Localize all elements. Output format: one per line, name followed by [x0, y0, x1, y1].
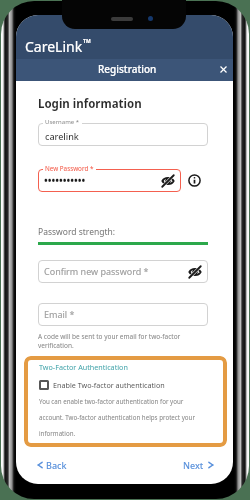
staticText: •••••••••••	[44, 173, 86, 187]
staticText: Two-Factor Authentication	[39, 362, 128, 372]
staticText: Confirm new password *	[44, 265, 149, 277]
button[interactable]: Next	[183, 459, 214, 471]
staticText: Next	[183, 459, 204, 471]
button[interactable]: Hide password	[162, 175, 174, 187]
staticText: New Password *	[45, 164, 94, 173]
staticText: Password strength:	[38, 226, 116, 238]
staticText: Enable Two-factor authentication	[53, 380, 165, 390]
staticText: Login information	[38, 96, 142, 112]
staticText: CareLink	[25, 37, 83, 56]
button[interactable]: Back	[37, 459, 67, 471]
staticText: A code will be sent to your email for tw…	[38, 332, 181, 350]
staticText: TM	[83, 38, 91, 45]
button[interactable]: carelink	[38, 123, 208, 146]
staticText: You can enable two-factor authentication…	[39, 397, 195, 437]
staticText: carelink	[45, 130, 79, 142]
staticText: Email *	[44, 308, 75, 320]
button[interactable]: •••••••••••	[38, 169, 181, 192]
button[interactable]: Email *	[38, 303, 208, 326]
button[interactable]: Close	[215, 61, 232, 78]
button[interactable]: Password requirements info	[188, 174, 201, 187]
staticText: Username *	[45, 118, 80, 126]
staticText: Registration	[98, 62, 157, 76]
button[interactable]: Confirm new password *	[38, 260, 208, 283]
button[interactable]: Enable Two-factor authentication	[39, 378, 165, 388]
button[interactable]: Show password	[189, 266, 201, 278]
staticText: Back	[46, 459, 67, 471]
